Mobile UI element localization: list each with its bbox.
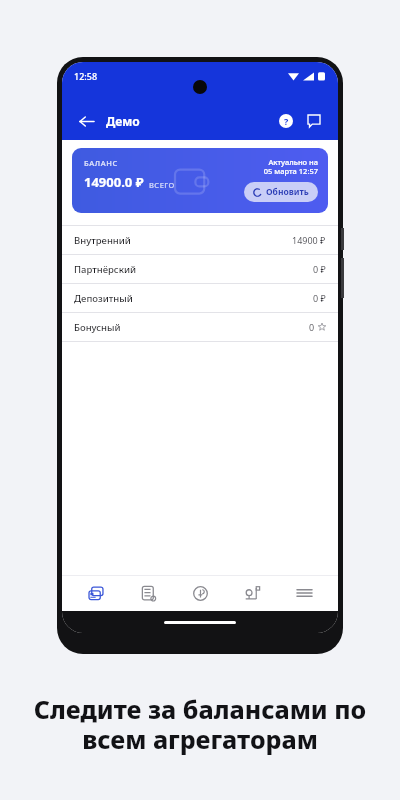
staticText: Демо [106,113,140,129]
button[interactable]: Help [274,109,298,133]
button[interactable]: Tracking [230,575,274,611]
button[interactable]: Депозитный [62,283,338,312]
staticText: БАЛАНС [84,158,118,168]
staticText: Следите за балансами по всем агрегаторам [0,692,400,757]
button[interactable]: Back [74,109,98,133]
button[interactable]: Обновить [244,182,318,202]
staticText: Депозитный [74,292,133,305]
staticText: 14900 ₽ [292,234,326,246]
staticText: 0 ₽ [313,292,326,304]
staticText: ? [284,115,289,127]
button[interactable]: Партнёрский [62,254,338,283]
button[interactable]: Reports [126,575,170,611]
staticText: 0 ₽ [313,263,326,275]
staticText: Партнёрский [74,263,137,276]
staticText: Обновить [266,186,309,198]
staticText: Внутренний [74,234,131,247]
staticText: 14900.0 ₽ [84,173,144,191]
button[interactable]: Cards [74,575,118,611]
staticText: 0 [309,321,315,333]
button[interactable]: Finance [178,575,222,611]
staticText: 12:58 [74,70,98,82]
staticText: Бонусный [74,321,121,334]
staticText: ВСЕГО [149,180,175,190]
button[interactable]: Chat [302,109,326,133]
staticText: Актуально на 05 марта 12:57 [263,157,318,177]
button[interactable]: БАЛАНС [72,148,328,213]
button[interactable]: Бонусный [62,312,338,341]
button[interactable]: Menu [282,575,326,611]
button[interactable]: Внутренний [62,225,338,254]
